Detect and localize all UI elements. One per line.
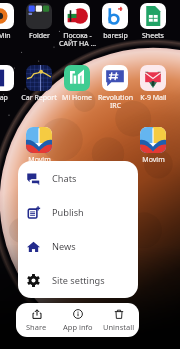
button[interactable]: Folder bbox=[20, 3, 58, 41]
button[interactable]: Publish bbox=[18, 195, 138, 229]
staticText: Car Report bbox=[21, 93, 57, 103]
staticText: News bbox=[52, 240, 76, 253]
staticText: Folder bbox=[29, 31, 50, 41]
staticText: App info bbox=[63, 322, 93, 332]
button[interactable]: Movim bbox=[20, 127, 58, 165]
staticText: Movim bbox=[142, 155, 165, 165]
staticText: Site settings bbox=[52, 274, 105, 287]
button[interactable]: Site settings bbox=[18, 263, 138, 297]
staticText: K-9 Mail bbox=[140, 93, 167, 103]
staticText: …ap bbox=[0, 93, 8, 103]
staticText: Mi Home bbox=[62, 93, 92, 103]
staticText: Sheets bbox=[142, 31, 164, 41]
button[interactable]: K-9 Mail bbox=[134, 65, 172, 103]
button[interactable]: Chats bbox=[18, 161, 138, 195]
staticText: Revolution IRC bbox=[98, 93, 133, 110]
staticText: Publish bbox=[52, 206, 84, 219]
button[interactable]: Share bbox=[16, 303, 57, 337]
staticText: baresip bbox=[103, 31, 128, 41]
button[interactable]: baresip bbox=[96, 3, 134, 41]
staticText: Movim bbox=[28, 155, 51, 165]
button[interactable]: App info bbox=[57, 303, 98, 337]
button[interactable]: Посока - САЙТ НА … bbox=[58, 3, 96, 48]
button[interactable]: Movim bbox=[134, 127, 172, 165]
staticText: Share bbox=[26, 322, 47, 332]
button[interactable]: Mi Home bbox=[58, 65, 96, 103]
button[interactable]: …ap bbox=[0, 65, 20, 103]
button[interactable]: News bbox=[18, 229, 138, 263]
button[interactable]: Sheets bbox=[134, 3, 172, 41]
staticText: Посока - САЙТ НА … bbox=[59, 31, 96, 48]
staticText: Uninstall bbox=[103, 322, 135, 332]
button[interactable]: Uninstall bbox=[98, 303, 139, 337]
button[interactable]: …Min bbox=[0, 3, 20, 41]
staticText: …Min bbox=[0, 31, 11, 41]
button[interactable]: Revolution IRC bbox=[96, 65, 134, 110]
staticText: Chats bbox=[52, 172, 77, 185]
button[interactable]: Car Report bbox=[20, 65, 58, 103]
